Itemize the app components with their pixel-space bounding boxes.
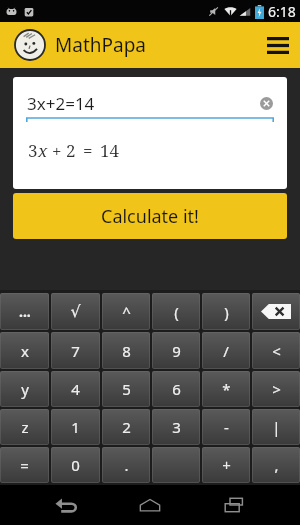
button[interactable]: Blank [152, 447, 200, 483]
button[interactable]: Home [124, 486, 176, 524]
button[interactable]: = [0, 447, 49, 483]
staticText: ^ [122, 302, 131, 322]
staticText: x [21, 341, 29, 361]
button[interactable]: Recent apps [208, 486, 260, 524]
button[interactable]: x [0, 332, 49, 369]
button[interactable]: < [252, 332, 300, 369]
button[interactable]: Backspace [252, 293, 300, 330]
staticText: ) [224, 302, 229, 322]
button[interactable]: / [202, 332, 250, 369]
button[interactable]: Clear [257, 94, 276, 113]
button[interactable]: 3x+2=14 [13, 77, 287, 189]
button[interactable]: ( [152, 293, 200, 330]
button[interactable]: 0 [51, 447, 100, 483]
staticText: + [52, 139, 62, 162]
staticText: = [20, 455, 29, 475]
button[interactable]: 1 [51, 409, 100, 445]
button[interactable]: 6 [152, 371, 200, 407]
button[interactable]: Back [40, 486, 92, 524]
staticText: 1 [71, 417, 80, 437]
button[interactable]: . [102, 447, 150, 483]
button[interactable]: 5 [102, 371, 150, 407]
staticText: * [222, 379, 231, 399]
staticText: 3 [172, 417, 181, 437]
button[interactable]: ^ [102, 293, 150, 330]
staticText: 14 [100, 139, 120, 162]
button[interactable]: Menu [256, 22, 300, 68]
staticText: 8 [122, 341, 131, 361]
button[interactable]: 3 [152, 409, 200, 445]
staticText: 0 [71, 455, 80, 475]
staticText: 3 [28, 139, 38, 162]
staticText: z [21, 417, 29, 437]
button[interactable]: y [0, 371, 49, 407]
staticText: 2 [122, 417, 131, 437]
staticText: | [272, 417, 281, 437]
staticText: 6 [172, 379, 181, 399]
staticText: MathPapa [55, 32, 146, 58]
staticText: + [222, 455, 231, 475]
staticText: 9 [172, 341, 181, 361]
staticText: / [223, 341, 229, 361]
button[interactable]: Calculate it! [13, 193, 287, 239]
staticText: ( [174, 302, 179, 322]
button[interactable]: | [252, 409, 300, 445]
staticText: , [274, 455, 279, 475]
button[interactable]: ) [202, 293, 250, 330]
button[interactable]: 8 [102, 332, 150, 369]
button[interactable]: 2 [102, 409, 150, 445]
staticText: y [21, 379, 29, 399]
button[interactable]: , [252, 447, 300, 483]
staticText: x [38, 139, 48, 162]
button[interactable]: * [202, 371, 250, 407]
button[interactable]: 4 [51, 371, 100, 407]
staticText: √ [70, 302, 81, 321]
staticText: 6:18 [268, 2, 296, 21]
staticText: 7 [71, 341, 80, 361]
button[interactable]: > [252, 371, 300, 407]
staticText: ... [19, 302, 31, 321]
staticText: Calculate it! [101, 204, 199, 229]
staticText: = [83, 139, 93, 162]
staticText: - [224, 417, 229, 437]
staticText: 2 [66, 139, 76, 162]
staticText: 3x+2=14 [27, 92, 95, 115]
button[interactable]: + [202, 447, 250, 483]
button[interactable]: - [202, 409, 250, 445]
button[interactable]: 7 [51, 332, 100, 369]
button[interactable]: ... [0, 293, 49, 330]
button[interactable]: z [0, 409, 49, 445]
staticText: . [124, 455, 129, 475]
staticText: > [272, 379, 281, 399]
staticText: < [272, 341, 281, 361]
button[interactable]: 9 [152, 332, 200, 369]
button[interactable]: √ [51, 293, 100, 330]
staticText: 5 [122, 379, 131, 399]
staticText: 4 [71, 379, 80, 399]
